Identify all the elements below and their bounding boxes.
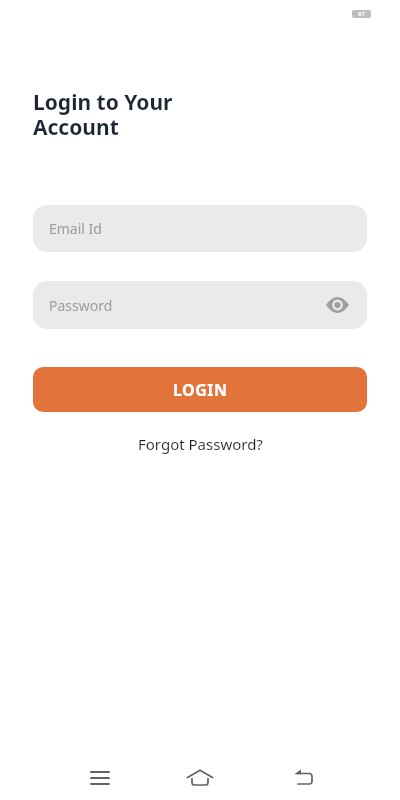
button[interactable]	[185, 760, 215, 790]
staticText: 87	[358, 10, 365, 18]
staticText: LOGIN	[173, 379, 228, 401]
staticText: Login to Your Account	[33, 88, 173, 141]
button[interactable]	[86, 764, 114, 792]
staticText: Password	[49, 296, 113, 315]
button[interactable]: LOGIN	[33, 367, 367, 412]
button[interactable]	[291, 760, 319, 788]
button[interactable]: Password	[33, 281, 367, 329]
button[interactable]: Email Id	[33, 205, 367, 252]
staticText: Email Id	[49, 219, 102, 238]
button[interactable]: Forgot Password?	[138, 434, 263, 454]
